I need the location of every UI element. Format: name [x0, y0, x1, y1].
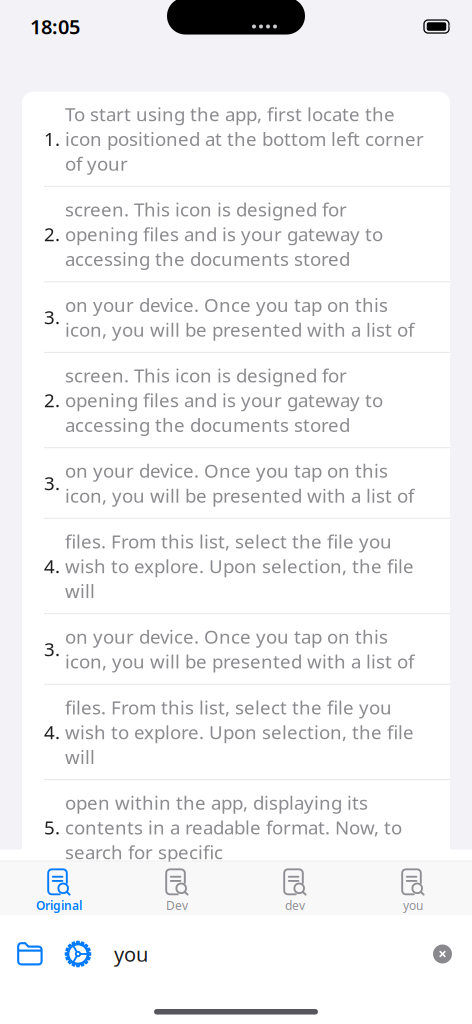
button[interactable]: Files [0, 930, 54, 978]
staticText: on your device. Once you tap on this [65, 624, 388, 649]
staticText: search for specific [65, 840, 223, 864]
staticText: 3. [44, 637, 60, 661]
staticText: icon positioned at the bottom left corne… [65, 126, 424, 151]
staticText: you [403, 897, 423, 913]
staticText: icon, you will be presented with a list … [65, 483, 414, 508]
staticText: Original [36, 897, 82, 913]
staticText: accessing the documents stored [65, 412, 350, 437]
button[interactable]: Original [0, 861, 118, 916]
staticText: of your [65, 151, 128, 176]
staticText: on your device. Once you tap on this [65, 292, 388, 317]
staticText: on your device. Once you tap on this [65, 458, 388, 483]
button[interactable]: you [354, 861, 472, 916]
staticText: To start using the app, first locate the [65, 101, 395, 126]
staticText: 5. [44, 815, 60, 840]
button[interactable]: Dev [118, 861, 236, 916]
staticText: opening files and is your gateway to [65, 222, 383, 246]
button[interactable]: Close [433, 932, 472, 975]
staticText: dev [285, 897, 305, 913]
staticText: 1. [44, 126, 60, 151]
staticText: opening files and is your gateway to [65, 388, 383, 412]
staticText: wish to explore. Upon selection, the fil… [65, 554, 414, 578]
staticText: will [65, 578, 95, 603]
staticText: screen. This icon is designed for [65, 363, 347, 388]
staticText: 2. [44, 388, 60, 412]
staticText: Dev [166, 897, 188, 913]
staticText: icon, you will be presented with a list … [65, 649, 414, 674]
staticText: wish to explore. Upon selection, the fil… [65, 719, 414, 744]
staticText: will [65, 744, 95, 769]
staticText: icon, you will be presented with a list … [65, 317, 414, 342]
staticText: 4. [44, 554, 60, 578]
staticText: contents in a readable format. Now, to [65, 815, 402, 840]
staticText: 2. [44, 222, 60, 246]
button[interactable]: Settings [54, 929, 102, 979]
staticText: you [114, 941, 148, 967]
staticText: 4. [44, 719, 60, 744]
staticText: 3. [44, 471, 60, 495]
staticText: 18:05 [30, 13, 80, 40]
staticText: files. From this list, select the file y… [65, 529, 392, 554]
staticText: screen. This icon is designed for [65, 197, 347, 222]
staticText: files. From this list, select the file y… [65, 695, 392, 719]
staticText: open within the app, displaying its [65, 790, 368, 815]
staticText: 3. [44, 305, 60, 329]
button[interactable]: dev [236, 861, 354, 916]
staticText: accessing the documents stored [65, 246, 350, 271]
